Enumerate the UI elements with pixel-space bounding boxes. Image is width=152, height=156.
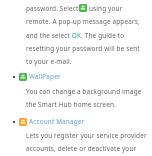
staticText: Lets you register your service provider (26, 131, 147, 140)
staticText: resetting your password will be sent (26, 44, 140, 53)
staticText: and the select OK. The guide to (26, 31, 125, 40)
staticText: You can change a background image (26, 87, 142, 96)
staticText: to your e-mail. (26, 57, 72, 66)
staticText: accounts, delete or deactivate your (26, 144, 137, 153)
staticText: Account Manager (29, 117, 85, 126)
staticText: remote. A pop-up message appears, (26, 17, 140, 26)
button[interactable]: Wallpaper menu key (12, 72, 62, 81)
other: Account Manager menu key (19, 118, 27, 126)
staticText: password. Select (26, 4, 79, 13)
other: Wallpaper menu key (19, 73, 27, 81)
staticText: WallPaper (29, 72, 61, 81)
other: Tools key (79, 4, 87, 12)
staticText: using your (89, 4, 123, 13)
staticText: the Smart Hub home screen. (26, 100, 116, 109)
button[interactable]: Account Manager menu key (12, 117, 86, 126)
